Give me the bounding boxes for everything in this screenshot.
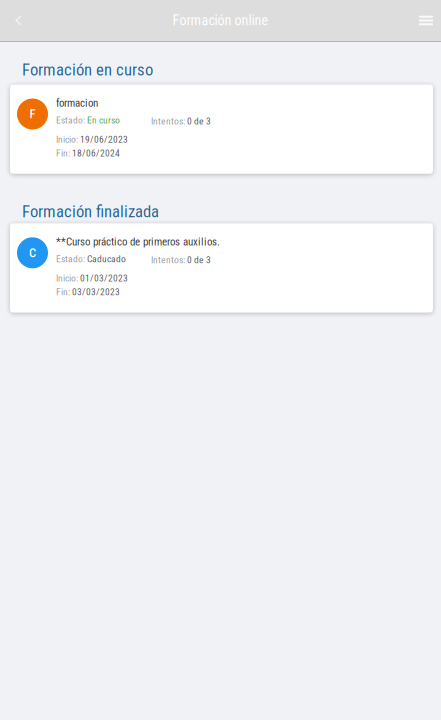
staticText: 19/06/2023 [80, 134, 128, 145]
staticText: Fin: [56, 147, 72, 159]
staticText: formacion [56, 97, 98, 109]
staticText: Formación online [172, 12, 268, 29]
staticText: Fin: [56, 286, 72, 298]
staticText: Inicio: [56, 134, 80, 145]
staticText: 03/03/2023 [72, 286, 120, 298]
button[interactable]: C [10, 223, 433, 313]
staticText: C [29, 245, 36, 260]
staticText: 18/06/2024 [72, 147, 120, 159]
staticText: Intentos: [151, 115, 187, 127]
staticText: Formación en curso [22, 60, 153, 79]
staticText: **Curso práctico de primeros auxilios. [56, 235, 220, 248]
staticText: Estado: [56, 114, 87, 126]
staticText: Caducado [87, 253, 126, 265]
staticText: 0 de 3 [187, 254, 211, 266]
staticText: Intentos: [151, 254, 187, 266]
staticText: Inicio: [56, 273, 80, 284]
staticText: En curso [87, 114, 120, 126]
staticText: 01/03/2023 [80, 273, 128, 284]
staticText: Estado: [56, 253, 87, 265]
button[interactable]: Menu [410, 0, 441, 41]
staticText: Formación finalizada [22, 202, 159, 221]
button[interactable]: F [10, 84, 433, 174]
staticText: F [29, 107, 35, 121]
staticText: 0 de 3 [187, 115, 211, 127]
